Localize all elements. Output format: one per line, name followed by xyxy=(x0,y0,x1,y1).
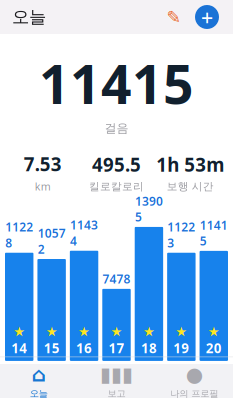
staticText: 1h 53m xyxy=(156,152,224,177)
staticText: 19 xyxy=(173,339,189,357)
staticText: ✎ xyxy=(166,7,181,27)
staticText: ● xyxy=(186,363,203,386)
staticText: ★ xyxy=(13,324,25,339)
staticText: 16 xyxy=(76,339,92,357)
staticText: 15 xyxy=(44,339,60,357)
staticText: 금 xyxy=(176,365,187,378)
button[interactable]: ▮▮▮ xyxy=(78,357,155,398)
staticText: 11434 xyxy=(70,217,98,249)
staticText: 오늘 xyxy=(30,388,48,398)
staticText: 킬로칼로리 xyxy=(89,180,144,193)
staticText: 걸음 xyxy=(104,121,128,135)
staticText: 14 xyxy=(11,339,27,357)
staticText: 17 xyxy=(108,339,124,357)
staticText: ★ xyxy=(46,324,58,339)
staticText: 7478 xyxy=(102,271,130,287)
staticText: + xyxy=(201,3,213,31)
staticText: 20 xyxy=(206,339,222,357)
button[interactable]: Add xyxy=(193,3,221,31)
staticText: ★ xyxy=(175,324,187,339)
staticText: 11228 xyxy=(5,219,33,251)
staticText: 18 xyxy=(141,339,157,357)
staticText: 보고 xyxy=(107,388,125,398)
staticText: 11415 xyxy=(200,217,228,249)
staticText: 11223 xyxy=(167,219,195,251)
staticText: 보행 시간 xyxy=(167,180,214,193)
staticText: ★ xyxy=(208,324,220,339)
staticText: ★ xyxy=(78,324,90,339)
staticText: 495.5 xyxy=(92,152,141,177)
staticText: km xyxy=(35,179,51,194)
staticText: 수 xyxy=(111,365,122,378)
staticText: 나의 프로필 xyxy=(170,388,218,398)
staticText: 오늘 xyxy=(12,6,46,28)
staticText: 10572 xyxy=(38,225,66,257)
button[interactable]: ⌂ xyxy=(0,357,78,398)
staticText: 13905 xyxy=(135,193,163,225)
button[interactable]: ● xyxy=(155,357,233,398)
staticText: 11415 xyxy=(39,48,194,119)
staticText: ★ xyxy=(110,324,122,339)
staticText: 7.53 xyxy=(24,152,62,176)
staticText: 일일 평균: 11036 xyxy=(70,373,163,389)
staticText: ★ xyxy=(143,324,155,339)
staticText: ⌂ xyxy=(32,363,46,386)
staticText: ▮▮▮ xyxy=(100,363,133,386)
button[interactable]: Edit xyxy=(163,4,185,30)
